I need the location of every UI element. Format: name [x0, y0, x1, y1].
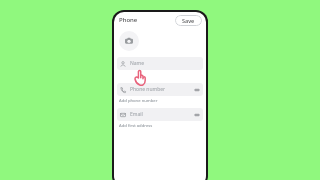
staticText: Add phone number	[119, 98, 158, 104]
staticText: Email	[130, 111, 143, 118]
button[interactable]: More options	[194, 112, 200, 118]
staticText: Save	[182, 17, 195, 24]
staticText: Add first address	[119, 123, 153, 129]
button[interactable]: More options	[194, 87, 200, 93]
staticText: Name	[130, 60, 145, 67]
staticText: Phone	[119, 16, 138, 24]
button[interactable]: Add photo	[119, 31, 139, 51]
staticText: Phone number	[130, 86, 166, 93]
button[interactable]: Name	[117, 57, 203, 70]
button[interactable]: Phone number	[117, 83, 203, 96]
button[interactable]: Email	[117, 108, 203, 121]
button[interactable]: Save	[175, 15, 202, 26]
